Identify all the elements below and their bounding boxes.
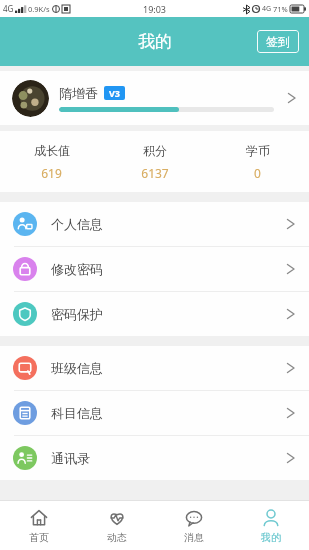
button[interactable]: 修改密码 [0,247,309,291]
staticText: 我的 [138,31,172,52]
staticText: 学币 [246,143,270,158]
button[interactable]: 签到 [257,30,299,53]
staticText: 71% [273,4,288,14]
button[interactable]: 消息 [155,501,232,550]
staticText: 隋增香 [59,85,98,101]
staticText: 修改密码 [51,261,103,277]
button[interactable]: 隋增香 [0,71,309,125]
button[interactable]: 个人信息 [0,202,309,246]
staticText: 619 [41,165,62,181]
staticText: 密码保护 [51,306,103,322]
staticText: 4G [3,3,14,14]
staticText: 我的 [261,531,281,544]
staticText: 科目信息 [51,405,103,421]
button[interactable]: 动态 [78,501,155,550]
staticText: 6137 [141,165,169,181]
staticText: 班级信息 [51,360,103,376]
staticText: 19:03 [143,3,167,15]
button[interactable]: 我的 [232,501,309,550]
button[interactable]: 班级信息 [0,346,309,390]
staticText: 签到 [266,34,290,49]
staticText: 消息 [184,531,204,544]
staticText: 通讯录 [51,450,90,466]
staticText: 0 [254,165,261,181]
staticText: 4G [262,4,272,14]
staticText: 动态 [107,531,127,544]
staticText: V3 [109,87,120,99]
staticText: 0.9K/s [28,4,50,14]
button[interactable]: 通讯录 [0,436,309,480]
staticText: 个人信息 [51,216,103,232]
staticText: 首页 [29,531,49,544]
button[interactable]: 首页 [0,501,78,550]
staticText: 积分 [143,143,167,158]
staticText: 成长值 [34,143,70,158]
button[interactable]: 科目信息 [0,391,309,435]
button[interactable]: 密码保护 [0,292,309,336]
